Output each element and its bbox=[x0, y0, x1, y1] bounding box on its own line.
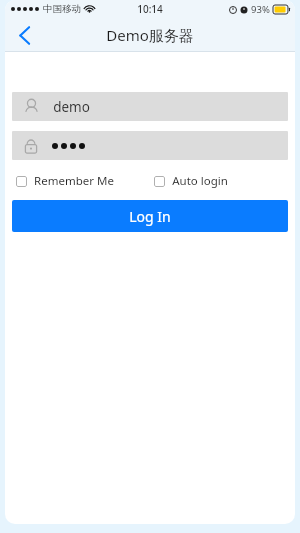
staticText: Demo服务器 bbox=[106, 25, 194, 45]
button[interactable] bbox=[12, 131, 288, 160]
button[interactable]: Auto login bbox=[154, 171, 228, 191]
staticText: Log In bbox=[129, 207, 171, 226]
button[interactable]: Back bbox=[5, 18, 43, 52]
staticText: Auto login bbox=[172, 173, 228, 189]
button[interactable]: Log In bbox=[12, 200, 288, 232]
staticText: Remember Me bbox=[34, 173, 114, 189]
staticText: 10:14 bbox=[137, 2, 163, 16]
staticText: demo bbox=[53, 98, 90, 116]
button[interactable]: Remember Me bbox=[16, 171, 114, 191]
staticText: 中国移动 bbox=[43, 3, 81, 15]
button[interactable]: demo bbox=[12, 92, 288, 121]
staticText: 93% bbox=[251, 3, 270, 16]
